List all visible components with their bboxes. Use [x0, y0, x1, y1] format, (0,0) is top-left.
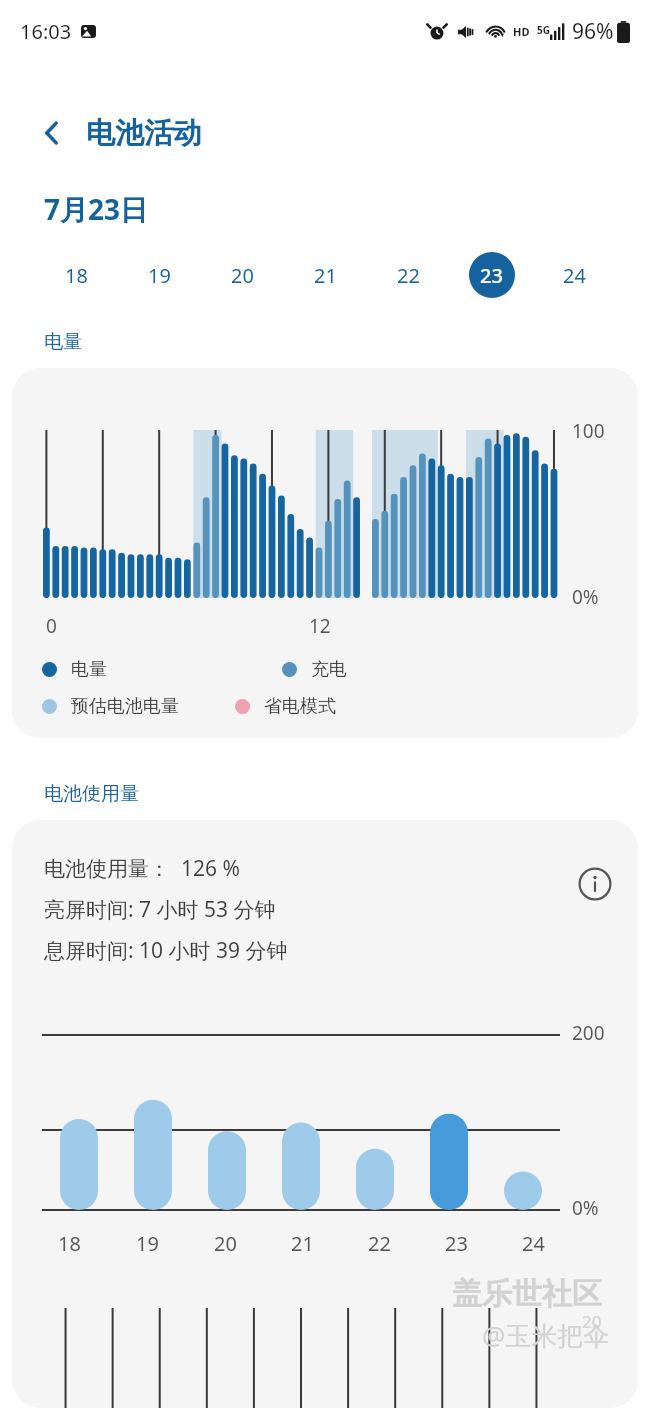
- button[interactable]: 21: [284, 250, 367, 300]
- staticText: 电量: [44, 330, 82, 354]
- staticText: 24: [563, 262, 586, 289]
- staticText: 19: [148, 262, 171, 289]
- button[interactable]: 100: [12, 368, 638, 738]
- staticText: 电池使用量: [44, 782, 139, 806]
- staticText: 0%: [572, 1195, 599, 1221]
- staticText: 息屏时间: 10 小时 39 分钟: [44, 936, 288, 965]
- staticText: 96%: [572, 17, 614, 46]
- staticText: 18: [58, 1230, 81, 1257]
- button[interactable]: Info: [575, 864, 615, 904]
- staticText: 亮屏时间: 7 小时 53 分钟: [44, 895, 276, 924]
- staticText: @玉米把伞: [482, 1317, 610, 1353]
- staticText: 12: [309, 613, 331, 639]
- staticText: 电量: [71, 658, 107, 681]
- button[interactable]: 22: [367, 250, 450, 300]
- button[interactable]: 23: [450, 250, 533, 300]
- staticText: 100: [572, 418, 605, 444]
- staticText: 电池活动: [86, 115, 202, 152]
- staticText: 23: [480, 262, 503, 289]
- staticText: 0%: [572, 584, 599, 610]
- staticText: 5G: [537, 23, 550, 37]
- staticText: 充电: [311, 658, 347, 681]
- staticText: 16:03: [20, 18, 72, 45]
- staticText: 18: [65, 262, 88, 289]
- staticText: 21: [314, 262, 337, 289]
- staticText: 0: [46, 613, 57, 639]
- staticText: 预估电池电量: [71, 695, 179, 718]
- button[interactable]: 24: [533, 250, 616, 300]
- staticText: 20: [214, 1230, 237, 1257]
- staticText: HD: [513, 24, 530, 39]
- staticText: 20: [582, 1310, 602, 1333]
- button[interactable]: 电池使用量： 126 %: [12, 820, 638, 1408]
- button[interactable]: 18: [34, 250, 118, 300]
- staticText: 22: [397, 262, 420, 289]
- staticText: 省电模式: [264, 695, 336, 718]
- staticText: 7月23日: [44, 190, 149, 228]
- button[interactable]: 20: [201, 250, 284, 300]
- button[interactable]: 19: [118, 250, 201, 300]
- button[interactable]: Back: [30, 111, 74, 155]
- staticText: 200: [572, 1020, 605, 1046]
- staticText: 19: [136, 1230, 159, 1257]
- staticText: 盖乐世社区: [452, 1275, 602, 1313]
- staticText: 21: [291, 1230, 314, 1257]
- staticText: 22: [368, 1230, 391, 1257]
- staticText: 23: [445, 1230, 468, 1257]
- staticText: 24: [522, 1230, 545, 1257]
- staticText: 20: [231, 262, 254, 289]
- staticText: 电池使用量： 126 %: [44, 854, 240, 883]
